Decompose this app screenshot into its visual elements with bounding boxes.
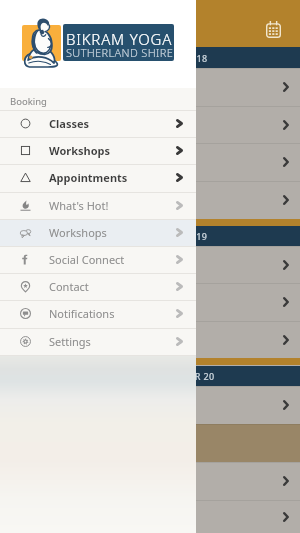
- staticText: Notifications: [49, 306, 115, 321]
- button[interactable]: [0, 143, 300, 181]
- staticText: MONDAY, MAR 18: [126, 52, 208, 64]
- staticText: Workshops: [49, 225, 107, 240]
- staticText: Classes: [49, 116, 90, 131]
- button[interactable]: Appointments: [0, 164, 196, 191]
- button[interactable]: Workshops: [0, 219, 196, 246]
- button[interactable]: Calendar: [258, 14, 289, 45]
- button[interactable]: [0, 386, 300, 424]
- button[interactable]: What's Hot!: [0, 192, 196, 219]
- staticText: Workshops: [49, 143, 111, 158]
- staticText: What's Hot!: [49, 198, 109, 213]
- button[interactable]: [0, 106, 300, 144]
- staticText: TUESDAY, MAR 19: [126, 230, 208, 242]
- staticText: Booking: [10, 95, 47, 108]
- button[interactable]: [0, 424, 300, 462]
- staticText: Social Connect: [49, 252, 125, 267]
- button[interactable]: [0, 246, 300, 284]
- staticText: Settings: [49, 334, 91, 349]
- staticText: Contact: [49, 279, 89, 294]
- staticText: SUTHERLAND SHIRE: [66, 45, 174, 60]
- button[interactable]: Workshops: [0, 137, 196, 164]
- staticText: WEDNESDAY, MAR 20: [117, 370, 215, 382]
- button[interactable]: Settings: [0, 328, 196, 355]
- button[interactable]: Social Connect: [0, 246, 196, 273]
- button[interactable]: [0, 321, 300, 359]
- button[interactable]: [0, 500, 300, 533]
- button[interactable]: Classes: [0, 110, 196, 137]
- button[interactable]: Contact: [0, 273, 196, 300]
- button[interactable]: [0, 68, 300, 106]
- button[interactable]: [0, 283, 300, 321]
- staticText: Appointments: [49, 170, 128, 185]
- button[interactable]: [0, 462, 300, 500]
- staticText: BIKRAM YOGA: [66, 29, 173, 49]
- button[interactable]: [0, 181, 300, 219]
- button[interactable]: Notifications: [0, 300, 196, 327]
